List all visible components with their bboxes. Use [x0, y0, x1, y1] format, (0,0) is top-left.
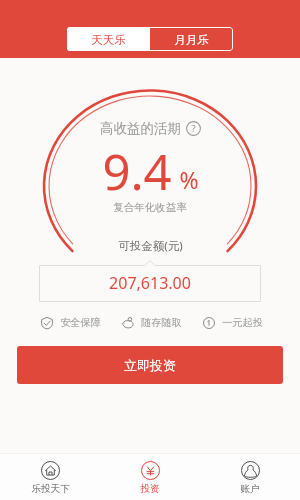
button[interactable]: 立即投资: [17, 346, 283, 384]
staticText: 天天乐: [91, 33, 126, 47]
button[interactable]: 安全保障: [41, 316, 101, 329]
button[interactable]: 一元起投: [203, 316, 263, 329]
staticText: 复合年化收益率: [113, 201, 187, 214]
staticText: 账户: [240, 483, 260, 495]
button[interactable]: 帮助: [186, 121, 201, 136]
button[interactable]: 207,613.00: [39, 260, 261, 302]
button[interactable]: 月月乐: [150, 27, 233, 51]
staticText: %: [179, 164, 199, 195]
staticText: 投资: [140, 483, 160, 495]
staticText: 月月乐: [174, 33, 209, 47]
staticText: 乐投天下: [31, 483, 70, 495]
staticText: 立即投资: [124, 357, 176, 373]
button[interactable]: 乐投天下: [0, 454, 100, 500]
staticText: 207,613.00: [109, 272, 191, 294]
button[interactable]: 天天乐: [67, 27, 150, 51]
staticText: 可投金额(元): [118, 238, 183, 254]
button[interactable]: 账户: [200, 454, 300, 500]
staticText: 安全保障: [60, 316, 101, 329]
staticText: ?: [191, 122, 196, 135]
staticText: 高收益的活期: [100, 120, 181, 137]
staticText: 一元起投: [222, 316, 263, 329]
button[interactable]: 投资: [100, 454, 200, 500]
staticText: 9.4: [102, 138, 172, 205]
button[interactable]: 随存随取: [122, 316, 182, 329]
staticText: 随存随取: [141, 316, 182, 329]
